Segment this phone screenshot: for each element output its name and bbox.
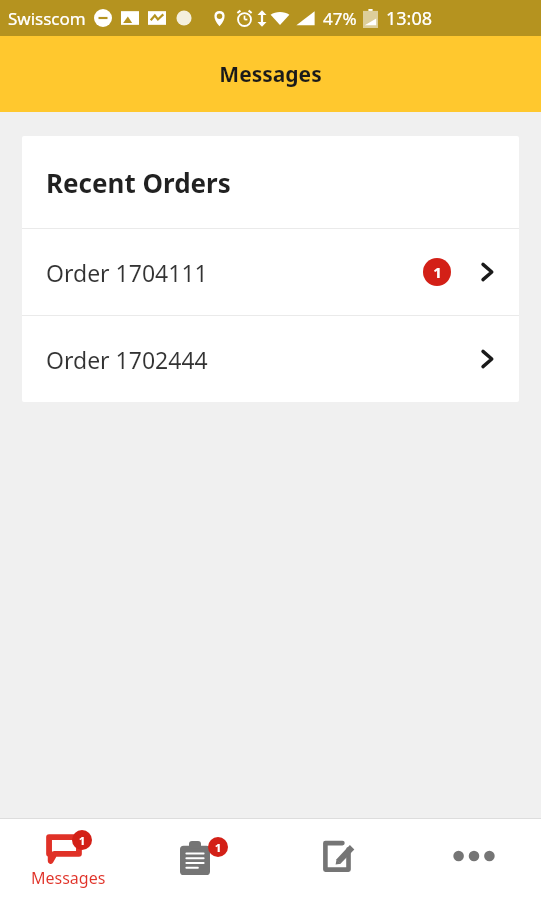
staticText: Order 1704111: [46, 257, 208, 288]
staticText: 1: [433, 262, 442, 282]
staticText: Messages: [219, 60, 322, 89]
staticText: 1: [79, 833, 86, 848]
button[interactable]: More: [406, 819, 541, 900]
staticText: 1: [215, 840, 222, 855]
button[interactable]: Orders: [136, 819, 271, 900]
button[interactable]: 1: [0, 819, 136, 900]
staticText: Order 1702444: [46, 344, 208, 375]
staticText: Messages: [31, 867, 106, 889]
button[interactable]: Order 1702444: [22, 316, 519, 402]
staticText: Recent Orders: [46, 165, 231, 200]
staticText: 47%: [323, 7, 357, 30]
button[interactable]: Compose: [271, 819, 406, 900]
staticText: 13:08: [386, 6, 433, 31]
staticText: Swisscom: [8, 7, 86, 30]
button[interactable]: Order 1704111: [22, 229, 519, 315]
